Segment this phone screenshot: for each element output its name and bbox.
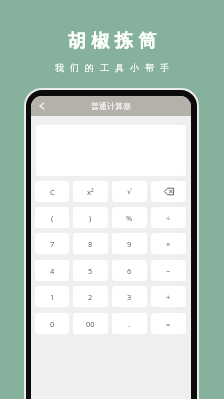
button[interactable]: −: [151, 260, 186, 281]
staticText: 4: [50, 266, 55, 276]
staticText: 6: [127, 266, 132, 276]
button[interactable]: Backspace: [151, 181, 186, 202]
button[interactable]: 5: [73, 260, 108, 281]
button[interactable]: +: [151, 286, 186, 307]
button[interactable]: ×: [151, 233, 186, 254]
button[interactable]: 6: [112, 260, 147, 281]
button[interactable]: 00: [73, 313, 108, 334]
staticText: √: [127, 187, 132, 196]
staticText: 胡椒拣筒: [65, 30, 159, 53]
staticText: 5: [88, 266, 93, 276]
staticText: x²: [87, 187, 94, 197]
staticText: 0: [50, 319, 55, 329]
button[interactable]: 1: [35, 286, 69, 307]
button[interactable]: (: [35, 207, 69, 228]
staticText: %: [126, 213, 133, 223]
button[interactable]: 4: [35, 260, 69, 281]
staticText: 3: [127, 292, 132, 302]
staticText: +: [166, 292, 171, 302]
button[interactable]: 8: [73, 233, 108, 254]
staticText: (: [51, 213, 54, 223]
button[interactable]: 9: [112, 233, 147, 254]
staticText: −: [166, 266, 171, 276]
button[interactable]: C: [35, 181, 69, 202]
staticText: 9: [127, 239, 132, 249]
staticText: .: [128, 319, 131, 329]
staticText: 7: [50, 239, 55, 249]
button[interactable]: 2: [73, 286, 108, 307]
staticText: ÷: [166, 213, 171, 223]
staticText: ×: [166, 239, 171, 249]
button[interactable]: ): [73, 207, 108, 228]
button[interactable]: =: [151, 313, 186, 334]
staticText: C: [50, 187, 55, 197]
button[interactable]: 3: [112, 286, 147, 307]
staticText: ): [89, 213, 92, 223]
staticText: 我们的工具小帮手: [52, 62, 172, 73]
staticText: 8: [88, 239, 93, 249]
button[interactable]: 0: [35, 313, 69, 334]
button[interactable]: Back: [35, 99, 49, 113]
button[interactable]: √: [112, 181, 147, 202]
button[interactable]: x²: [73, 181, 108, 202]
staticText: 普通计算器: [91, 101, 131, 111]
staticText: 00: [86, 319, 95, 329]
button[interactable]: 7: [35, 233, 69, 254]
staticText: =: [166, 319, 171, 329]
staticText: 1: [50, 292, 55, 302]
button[interactable]: %: [112, 207, 147, 228]
staticText: 2: [88, 292, 93, 302]
button[interactable]: ÷: [151, 207, 186, 228]
